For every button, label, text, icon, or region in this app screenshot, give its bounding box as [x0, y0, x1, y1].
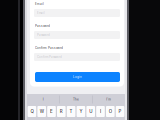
button[interactable]: Login [35, 72, 120, 82]
staticText: Confirm Password [35, 46, 63, 50]
staticText: Password [35, 24, 50, 28]
button[interactable]: R [57, 106, 66, 117]
button[interactable]: W [37, 106, 46, 117]
staticText: E [50, 109, 53, 114]
staticText: I [43, 98, 44, 101]
staticText: W [40, 109, 44, 114]
staticText: T [70, 109, 73, 114]
staticText: Y [79, 109, 82, 114]
button[interactable]: I [96, 106, 105, 117]
staticText: Password [37, 33, 50, 37]
button[interactable]: I [27, 94, 60, 105]
button[interactable]: U [86, 106, 95, 117]
button[interactable]: Y [77, 106, 85, 117]
staticText: Confirm Password [37, 55, 62, 59]
staticText: Q [30, 109, 33, 114]
button[interactable]: E [47, 106, 56, 117]
staticText: Email [35, 2, 44, 6]
staticText: O [109, 109, 112, 114]
staticText: Login [73, 75, 82, 79]
button[interactable]: P [116, 106, 124, 117]
staticText: Email [37, 11, 45, 15]
staticText: U [89, 109, 92, 114]
staticText: The [73, 98, 79, 101]
button[interactable]: I'm [92, 94, 125, 105]
staticText: I [100, 109, 101, 114]
button[interactable]: Q [28, 106, 36, 117]
button[interactable]: O [106, 106, 115, 117]
button[interactable]: T [67, 106, 75, 117]
button[interactable]: The [60, 94, 92, 105]
staticText: P [119, 109, 122, 114]
staticText: R [60, 109, 63, 114]
staticText: I'm [106, 98, 111, 101]
